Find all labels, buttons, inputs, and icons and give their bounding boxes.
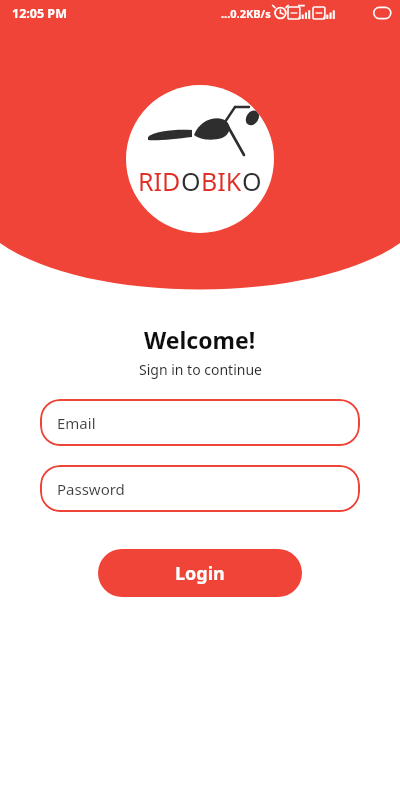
- button[interactable]: Password: [40, 465, 360, 512]
- staticText: ...0.2KB/s: [221, 6, 271, 21]
- staticText: Welcome!: [144, 324, 256, 355]
- button[interactable]: Email: [40, 399, 360, 446]
- staticText: Sign in to continue: [139, 360, 262, 379]
- staticText: Email: [57, 413, 96, 433]
- staticText: Password: [57, 479, 125, 499]
- staticText: BIK: [201, 164, 242, 198]
- staticText: O: [181, 164, 201, 198]
- button[interactable]: Login: [98, 549, 302, 597]
- staticText: O: [242, 164, 262, 198]
- staticText: Login: [175, 561, 225, 586]
- staticText: 12:05 PM: [12, 5, 67, 22]
- staticText: RID: [138, 164, 181, 198]
